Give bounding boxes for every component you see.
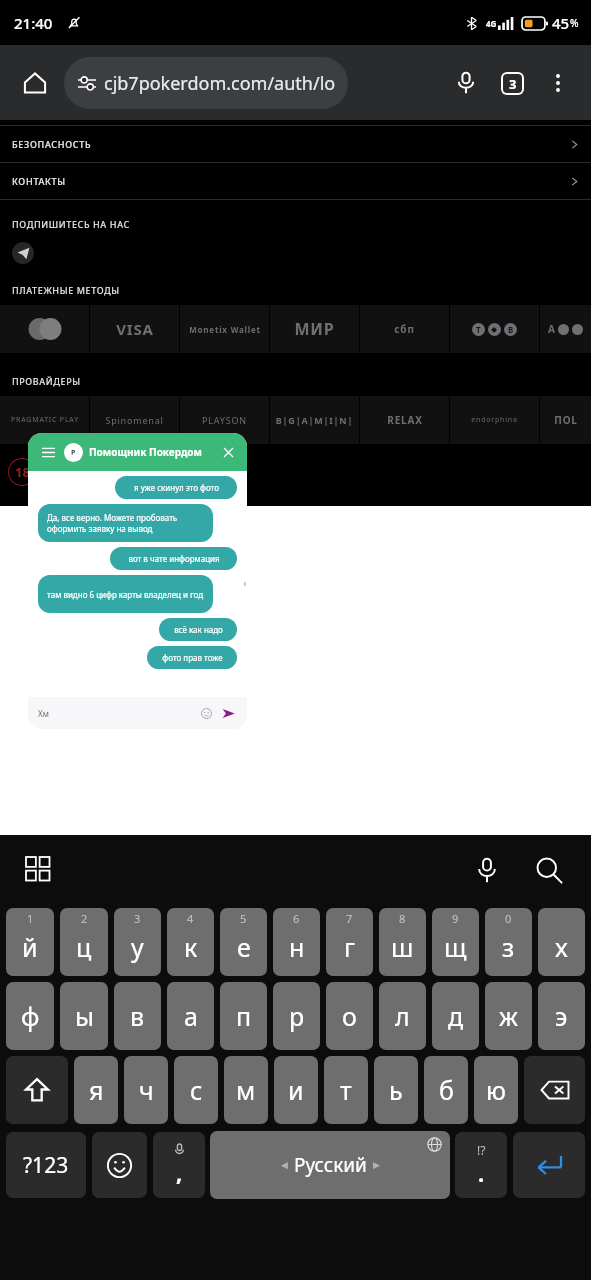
button[interactable]: КОНТАКТЫ xyxy=(0,163,591,199)
button[interactable]: Logo xyxy=(0,396,89,444)
button[interactable]: 6 xyxy=(273,908,320,976)
button[interactable]: More options xyxy=(535,60,581,106)
button[interactable]: Symbols xyxy=(6,1132,86,1198)
button[interactable]: б xyxy=(424,1056,468,1124)
button[interactable]: Logo xyxy=(0,305,89,353)
staticText: р xyxy=(289,999,305,1033)
button[interactable]: Logo xyxy=(450,396,539,444)
staticText: я xyxy=(89,1073,104,1107)
staticText: VISA xyxy=(116,319,154,339)
button[interactable]: л xyxy=(379,982,426,1050)
button[interactable]: Period xyxy=(455,1132,507,1198)
button[interactable]: п xyxy=(220,982,267,1050)
button[interactable]: Close xyxy=(219,443,237,461)
button[interactable]: 3 xyxy=(114,908,161,976)
button[interactable]: ю xyxy=(474,1056,518,1124)
button[interactable]: Emoji xyxy=(198,705,214,721)
staticText: ПОДПИШИТЕСЬ НА НАС xyxy=(12,218,130,230)
button[interactable]: Enter xyxy=(513,1132,585,1198)
staticText: Хм xyxy=(38,708,49,719)
button[interactable]: Да, все верно. Можете пробовать оформить… xyxy=(38,504,213,542)
button[interactable]: Logo xyxy=(540,396,591,444)
button[interactable]: т xyxy=(324,1056,368,1124)
button[interactable]: Logo xyxy=(450,305,539,353)
button[interactable]: 2 xyxy=(60,908,108,976)
button[interactable]: Logo xyxy=(180,396,269,444)
staticText: ж xyxy=(499,999,518,1033)
staticText: ▶ xyxy=(373,1160,380,1170)
staticText: ПРОВАЙДЕРЫ xyxy=(12,375,81,387)
button[interactable]: Voice input xyxy=(463,846,511,894)
button[interactable]: Emoji xyxy=(92,1132,147,1198)
staticText: 18 xyxy=(15,463,30,481)
button[interactable]: cjb7pokerdom.com/auth/lo xyxy=(64,57,348,109)
staticText: ы xyxy=(75,999,94,1033)
button[interactable]: Comma xyxy=(153,1132,205,1198)
staticText: и xyxy=(288,1073,304,1107)
button[interactable]: Search xyxy=(525,846,573,894)
button[interactable]: Logo xyxy=(90,396,179,444)
button[interactable]: Menu xyxy=(38,442,58,462)
button[interactable]: Logo xyxy=(540,305,591,353)
button[interactable]: 4 xyxy=(167,908,214,976)
button[interactable]: ◀ xyxy=(210,1131,450,1199)
staticText: Да, все верно. Можете пробовать оформить… xyxy=(47,512,204,535)
button[interactable]: 9 xyxy=(432,908,479,976)
button[interactable]: 1 xyxy=(6,908,54,976)
staticText: там видно 6 цифр карты владелец и год xyxy=(47,589,204,600)
staticText: ΠOL xyxy=(554,413,578,427)
button[interactable]: Logo xyxy=(180,305,269,353)
button[interactable]: БЕЗОПАСНОСТЬ xyxy=(0,126,591,162)
staticText: A xyxy=(548,322,555,336)
staticText: 0 xyxy=(505,911,512,926)
button[interactable]: Telegram xyxy=(12,242,34,264)
button[interactable]: р xyxy=(273,982,320,1050)
button[interactable]: ы xyxy=(60,982,108,1050)
staticText: 45 xyxy=(552,13,570,33)
button[interactable]: Clipboard xyxy=(18,849,60,891)
button[interactable]: Logo xyxy=(270,396,359,444)
button[interactable]: ч xyxy=(124,1056,168,1124)
button[interactable]: Backspace xyxy=(524,1056,585,1124)
button[interactable]: я уже скинул это фото xyxy=(115,476,237,499)
button[interactable]: х xyxy=(538,908,585,976)
staticText: ю xyxy=(486,1073,506,1107)
button[interactable]: с xyxy=(174,1056,218,1124)
button[interactable]: Logo xyxy=(90,305,179,353)
button[interactable]: Logo xyxy=(360,305,449,353)
button[interactable]: 0 xyxy=(485,908,532,976)
button[interactable]: 8 xyxy=(379,908,426,976)
button[interactable]: Shift xyxy=(6,1056,68,1124)
button[interactable]: Voice search xyxy=(443,60,489,106)
staticText: B xyxy=(508,324,514,335)
button[interactable]: Logo xyxy=(360,396,449,444)
button[interactable]: я xyxy=(74,1056,118,1124)
button[interactable]: ж xyxy=(485,982,532,1050)
button[interactable]: 5 xyxy=(220,908,267,976)
button[interactable]: Logo xyxy=(270,305,359,353)
button[interactable]: о xyxy=(326,982,373,1050)
button[interactable]: м xyxy=(224,1056,268,1124)
button[interactable]: д xyxy=(432,982,479,1050)
button[interactable]: всё как надо xyxy=(159,618,237,641)
staticText: д xyxy=(448,999,464,1033)
button[interactable]: и xyxy=(274,1056,318,1124)
button[interactable]: 7 xyxy=(326,908,373,976)
button[interactable]: вот в чате информация xyxy=(110,547,237,570)
button[interactable]: а xyxy=(167,982,214,1050)
button[interactable]: Home xyxy=(10,58,60,108)
staticText: э xyxy=(555,999,568,1033)
button[interactable]: фото прав тоже xyxy=(147,646,237,669)
button[interactable]: там видно 6 цифр карты владелец и год xyxy=(38,575,213,613)
button[interactable]: в xyxy=(114,982,161,1050)
staticText: !? xyxy=(477,1142,486,1158)
button[interactable]: ь xyxy=(374,1056,418,1124)
staticText: 4G xyxy=(486,18,497,29)
staticText: вот в чате информация xyxy=(128,553,220,564)
button[interactable]: Tabs: 3 xyxy=(489,60,535,106)
button[interactable]: Send xyxy=(219,704,237,722)
button[interactable]: ф xyxy=(6,982,54,1050)
staticText: ч xyxy=(139,1073,154,1107)
staticText: % xyxy=(570,16,579,30)
button[interactable]: э xyxy=(538,982,585,1050)
